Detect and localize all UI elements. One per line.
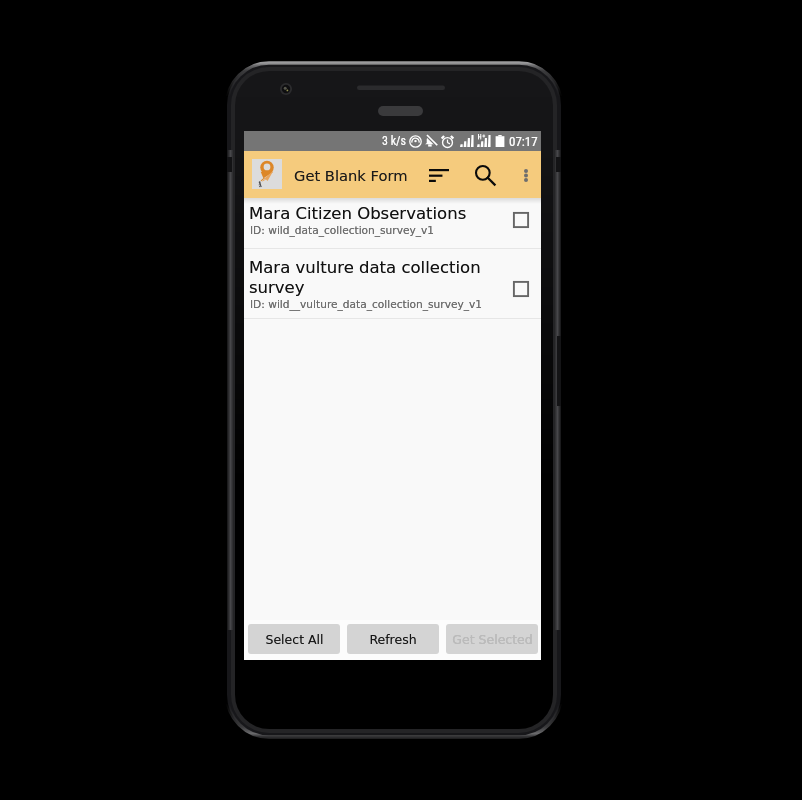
staticText: Mara vulture data collection survey (249, 258, 499, 297)
button[interactable]: Mara Citizen Observations (244, 198, 541, 248)
button[interactable]: Sort (419, 158, 459, 192)
staticText: Get Blank Form (294, 167, 408, 184)
staticText: 07:17 (509, 134, 538, 149)
staticText: Get Blank Form (294, 167, 408, 184)
button[interactable]: Mara vulture data collection survey (244, 249, 541, 318)
staticText: Get Selected (452, 632, 533, 647)
staticText: ID: wild_data_collection_survey_v1 (250, 224, 435, 236)
staticText: ID: wild__vulture_data_collection_survey… (250, 298, 483, 310)
staticText: Refresh (369, 632, 417, 647)
staticText: Select All (265, 632, 324, 647)
staticText: Mara Citizen Observations (249, 204, 467, 223)
staticText: ID: wild__vulture_data_collection_survey… (250, 298, 483, 310)
staticText: Refresh (369, 632, 417, 647)
button[interactable]: Search (465, 158, 505, 192)
button[interactable]: Select All (248, 624, 340, 654)
staticText: Mara vulture data collection survey (249, 258, 499, 297)
staticText: ID: wild_data_collection_survey_v1 (250, 224, 435, 236)
staticText: 3 k/s (382, 134, 407, 148)
staticText: Get Selected (452, 632, 533, 647)
button[interactable]: Refresh (347, 624, 439, 654)
staticText: Select All (265, 632, 324, 647)
staticText: Mara Citizen Observations (249, 204, 467, 223)
button[interactable]: Get Selected (446, 624, 538, 654)
button[interactable]: More options (509, 158, 542, 192)
